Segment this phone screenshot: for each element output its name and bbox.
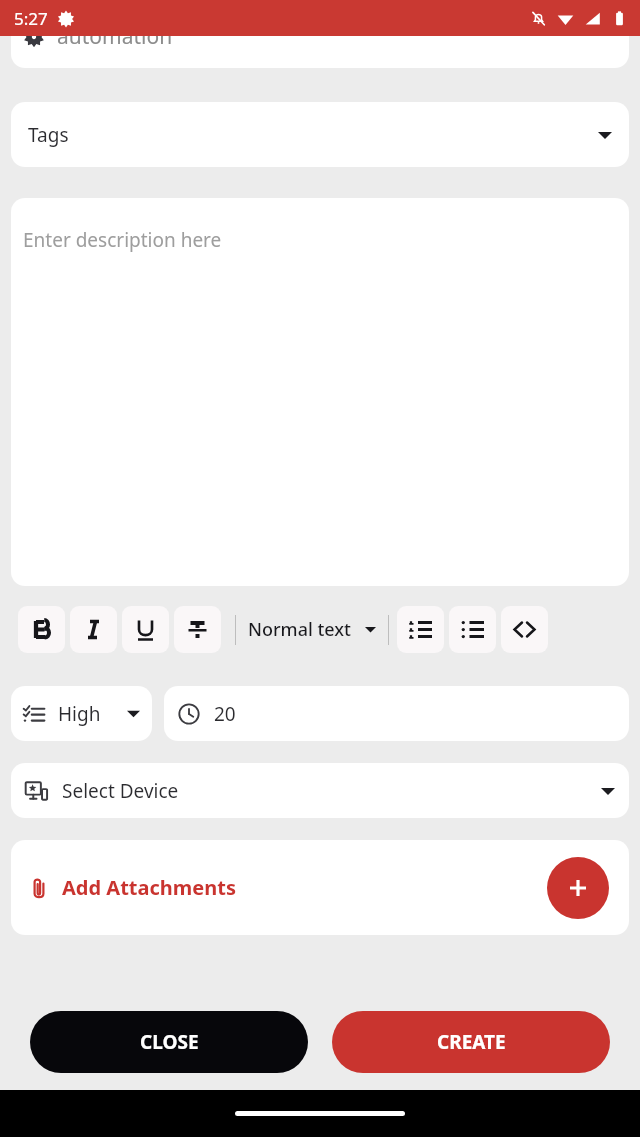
staticText: 20 (214, 701, 236, 727)
staticText: 5:27 (14, 7, 48, 30)
button[interactable]: Code (501, 606, 548, 653)
button[interactable]: Numbered list (397, 606, 444, 653)
button[interactable]: Add attachment (547, 857, 609, 919)
button[interactable]: CREATE (332, 1011, 610, 1073)
staticText: Add Attachments (62, 874, 236, 901)
button[interactable]: automation (11, 36, 629, 68)
button[interactable]: Underline (122, 606, 169, 653)
button[interactable]: Italic (70, 606, 117, 653)
staticText: CREATE (437, 1029, 506, 1055)
button[interactable]: Bulleted list (449, 606, 496, 653)
staticText: Normal text (248, 617, 351, 642)
staticText: automation (57, 36, 173, 51)
button[interactable]: Normal text (248, 617, 376, 642)
button[interactable]: Select Device (11, 763, 629, 818)
staticText: High (58, 701, 101, 727)
staticText: CLOSE (140, 1029, 199, 1055)
staticText: Select Device (62, 778, 179, 804)
staticText: Enter description here (23, 227, 222, 253)
button[interactable]: Enter description here (11, 198, 629, 586)
button[interactable]: Bold (18, 606, 65, 653)
button[interactable]: High (11, 686, 152, 741)
button[interactable]: CLOSE (30, 1011, 308, 1073)
button[interactable]: Add Attachments (28, 840, 629, 935)
button[interactable]: 20 (164, 686, 629, 741)
staticText: Tags (28, 122, 69, 148)
button[interactable]: Strikethrough (174, 606, 221, 653)
button[interactable]: Tags (11, 102, 629, 167)
